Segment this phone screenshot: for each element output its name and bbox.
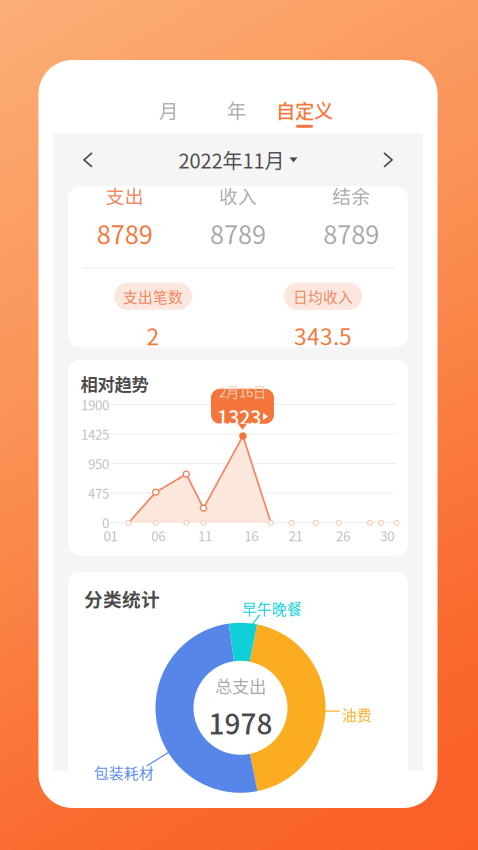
staticText: 8789: [210, 215, 266, 252]
button[interactable]: 年: [202, 60, 270, 133]
staticText: 1900: [81, 395, 109, 414]
staticText: 1425: [81, 424, 109, 443]
staticText: 早午晚餐: [242, 598, 302, 619]
staticText: 总支出: [215, 673, 266, 698]
staticText: 年: [227, 96, 246, 124]
staticText: 1978: [208, 702, 272, 743]
staticText: 2022年11月: [178, 145, 284, 174]
staticText: 2月16日: [219, 382, 266, 401]
staticText: 21: [288, 526, 302, 545]
button[interactable]: Previous period: [66, 140, 110, 180]
button[interactable]: 自定义: [270, 60, 338, 133]
staticText: 0: [102, 513, 109, 532]
staticText: 2: [146, 319, 159, 352]
staticText: 月: [159, 96, 178, 124]
button[interactable]: 2022年11月: [178, 140, 297, 180]
staticText: 包装耗材: [94, 762, 154, 783]
button[interactable]: 月: [134, 60, 202, 133]
staticText: 支出笔数: [123, 286, 183, 307]
staticText: 相对趋势: [80, 371, 148, 396]
staticText: 950: [88, 454, 109, 473]
staticText: 8789: [323, 215, 379, 252]
staticText: 343.5: [294, 319, 352, 352]
staticText: 日均收入: [293, 286, 353, 307]
staticText: 自定义: [276, 96, 333, 124]
staticText: 油费: [342, 704, 372, 725]
staticText: 475: [88, 483, 109, 502]
staticText: 16: [244, 526, 258, 545]
staticText: 分类统计: [84, 585, 160, 612]
staticText: 收入: [219, 182, 257, 209]
staticText: 06: [151, 526, 165, 545]
staticText: 支出: [106, 182, 144, 209]
staticText: 结余: [332, 182, 370, 209]
staticText: 8789: [97, 215, 153, 252]
staticText: 11: [198, 526, 212, 545]
staticText: 30: [380, 526, 394, 545]
staticText: 1323: [217, 402, 261, 431]
staticText: 26: [336, 526, 350, 545]
staticText: 01: [103, 526, 117, 545]
button[interactable]: Next period: [366, 140, 410, 180]
